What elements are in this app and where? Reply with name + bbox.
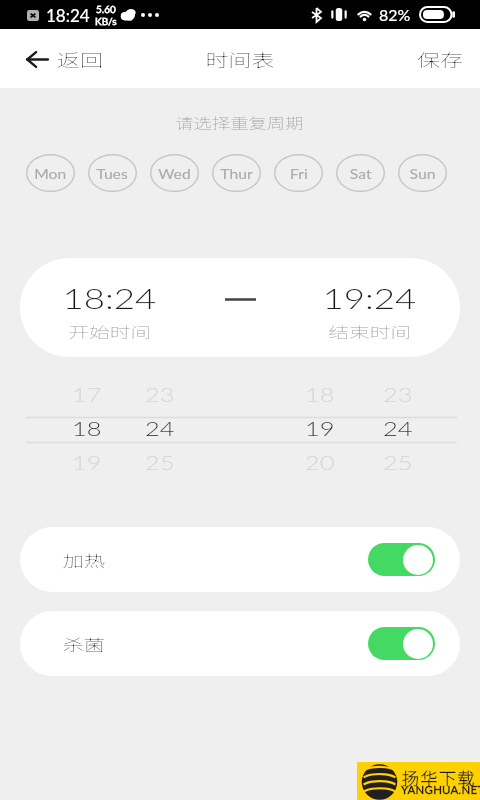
button[interactable]: 杀菌 bbox=[20, 611, 460, 676]
button[interactable]: 保存 bbox=[404, 35, 480, 83]
staticText: 19 bbox=[72, 451, 103, 474]
staticText: 23 bbox=[145, 383, 176, 406]
staticText: 返回 bbox=[57, 46, 103, 72]
staticText: 时间表 bbox=[205, 46, 274, 72]
staticText: 82% bbox=[379, 5, 411, 24]
staticText: 24 bbox=[383, 417, 414, 440]
staticText: 25 bbox=[145, 451, 176, 474]
button[interactable]: 19:24 bbox=[280, 258, 460, 357]
staticText: Wed bbox=[158, 165, 191, 182]
staticText: 18:24 bbox=[46, 5, 90, 25]
staticText: 18:24 bbox=[62, 282, 158, 314]
staticText: 杀菌 bbox=[63, 632, 106, 655]
staticText: 23 bbox=[383, 383, 414, 406]
staticText: 24 bbox=[145, 417, 176, 440]
staticText: 25 bbox=[383, 451, 414, 474]
staticText: KB/s bbox=[95, 15, 117, 27]
button[interactable]: Mon bbox=[26, 154, 75, 192]
button[interactable]: 加热 bbox=[20, 527, 460, 592]
button[interactable]: 18:24 bbox=[20, 258, 200, 357]
button[interactable]: Sat bbox=[336, 154, 385, 192]
staticText: 17 bbox=[72, 383, 103, 406]
button[interactable]: Fri bbox=[274, 154, 323, 192]
button[interactable]: Back bbox=[0, 37, 112, 81]
staticText: 18 bbox=[72, 417, 103, 440]
staticText: 5.60 bbox=[96, 3, 116, 15]
staticText: 扬华下载 bbox=[402, 765, 476, 790]
button[interactable]: Wed bbox=[150, 154, 199, 192]
button[interactable]: Sun bbox=[398, 154, 447, 192]
other: Back bbox=[26, 51, 48, 68]
staticText: YANGHUA.NET bbox=[401, 783, 480, 797]
button[interactable]: 17 bbox=[51, 378, 123, 480]
button[interactable]: Tues bbox=[88, 154, 137, 192]
button[interactable]: 18 bbox=[284, 378, 356, 480]
staticText: 19 bbox=[305, 417, 336, 440]
staticText: 加热 bbox=[63, 548, 106, 571]
button[interactable]: 23 bbox=[124, 378, 196, 480]
button[interactable]: Thur bbox=[212, 154, 261, 192]
staticText: 19:24 bbox=[322, 282, 418, 314]
staticText: 保存 bbox=[417, 46, 463, 72]
button[interactable]: 23 bbox=[362, 378, 434, 480]
staticText: Fri bbox=[290, 165, 308, 182]
staticText: Mon bbox=[34, 165, 67, 182]
staticText: 开始时间 bbox=[68, 321, 153, 343]
staticText: 请选择重复周期 bbox=[175, 112, 305, 134]
staticText: Sun bbox=[410, 165, 436, 182]
staticText: 18 bbox=[305, 383, 336, 406]
staticText: 20 bbox=[305, 451, 336, 474]
staticText: Tues bbox=[96, 165, 129, 182]
staticText: Sat bbox=[350, 165, 372, 182]
staticText: 结束时间 bbox=[328, 321, 413, 343]
staticText: Thur bbox=[220, 165, 253, 182]
